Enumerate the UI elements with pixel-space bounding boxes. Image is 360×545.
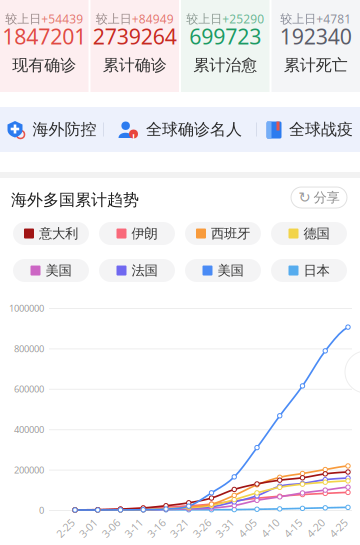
staticText: 累计确诊 — [103, 55, 167, 75]
staticText: 累计治愈 — [193, 55, 257, 75]
button[interactable]: ! — [104, 107, 256, 152]
staticText: 现有确诊 — [12, 55, 76, 75]
staticText: ! — [132, 130, 135, 143]
staticText: 2-25 — [55, 521, 76, 535]
staticText: 意大利 — [39, 225, 78, 242]
staticText: 0 — [39, 504, 44, 516]
button[interactable]: 伊朗 — [99, 222, 175, 245]
staticText: 800000 — [14, 342, 44, 355]
staticText: 较上日 — [5, 12, 41, 26]
staticText: 4-10 — [260, 521, 281, 535]
button[interactable]: 海外防控 — [0, 107, 103, 152]
staticText: 西班牙 — [211, 225, 250, 242]
staticText: 全球确诊名人 — [146, 120, 242, 139]
staticText: 600000 — [14, 383, 44, 395]
staticText: 分享 — [313, 189, 339, 206]
staticText: 3-11 — [123, 521, 144, 535]
staticText: 较上日 — [280, 12, 316, 26]
staticText: 192340 — [280, 22, 352, 50]
staticText: 4-25 — [328, 521, 349, 535]
staticText: 3-21 — [169, 521, 190, 535]
staticText: +4781 — [316, 11, 351, 27]
staticText: 2739264 — [93, 22, 177, 50]
staticText: 1000000 — [9, 302, 44, 314]
staticText: 4-20 — [305, 521, 326, 535]
button[interactable]: 德国 — [271, 222, 347, 245]
button[interactable]: 全球战疫 — [257, 107, 360, 152]
button[interactable]: More — [345, 351, 360, 393]
staticText: ↻ — [298, 189, 310, 206]
button[interactable]: 西班牙 — [185, 222, 261, 245]
staticText: 699723 — [189, 22, 261, 50]
staticText: 伊朗 — [131, 225, 157, 242]
button[interactable]: 美国 — [13, 259, 89, 282]
staticText: 3-16 — [146, 521, 167, 535]
staticText: 法国 — [131, 262, 157, 279]
staticText: 日本 — [303, 262, 329, 279]
button[interactable]: ↻ — [291, 187, 347, 208]
button[interactable]: 法国 — [99, 259, 175, 282]
staticText: 4-15 — [282, 521, 303, 535]
staticText: 3-26 — [191, 521, 212, 535]
staticText: 较上日 — [96, 12, 132, 26]
button[interactable]: 日本 — [271, 259, 347, 282]
button[interactable]: 美国 — [185, 259, 261, 282]
staticText: 德国 — [303, 225, 329, 242]
staticText: 美国 — [217, 262, 243, 279]
staticText: 1847201 — [2, 22, 86, 50]
staticText: 全球战疫 — [289, 120, 353, 139]
staticText: 海外防控 — [32, 120, 96, 139]
staticText: 较上日 — [186, 12, 222, 26]
button[interactable]: 意大利 — [13, 222, 89, 245]
staticText: 3-31 — [214, 521, 235, 535]
staticText: 3-01 — [78, 521, 99, 535]
staticText: 海外多国累计趋势 — [11, 190, 139, 210]
staticText: +54439 — [41, 11, 83, 27]
staticText: 400000 — [14, 423, 44, 436]
staticText: 200000 — [14, 464, 44, 476]
staticText: 累计死亡 — [284, 55, 348, 75]
staticText: 4-05 — [237, 521, 258, 535]
staticText: +25290 — [222, 11, 264, 27]
staticText: 3-06 — [100, 521, 121, 535]
staticText: +84949 — [132, 11, 174, 27]
staticText: 美国 — [45, 262, 71, 279]
